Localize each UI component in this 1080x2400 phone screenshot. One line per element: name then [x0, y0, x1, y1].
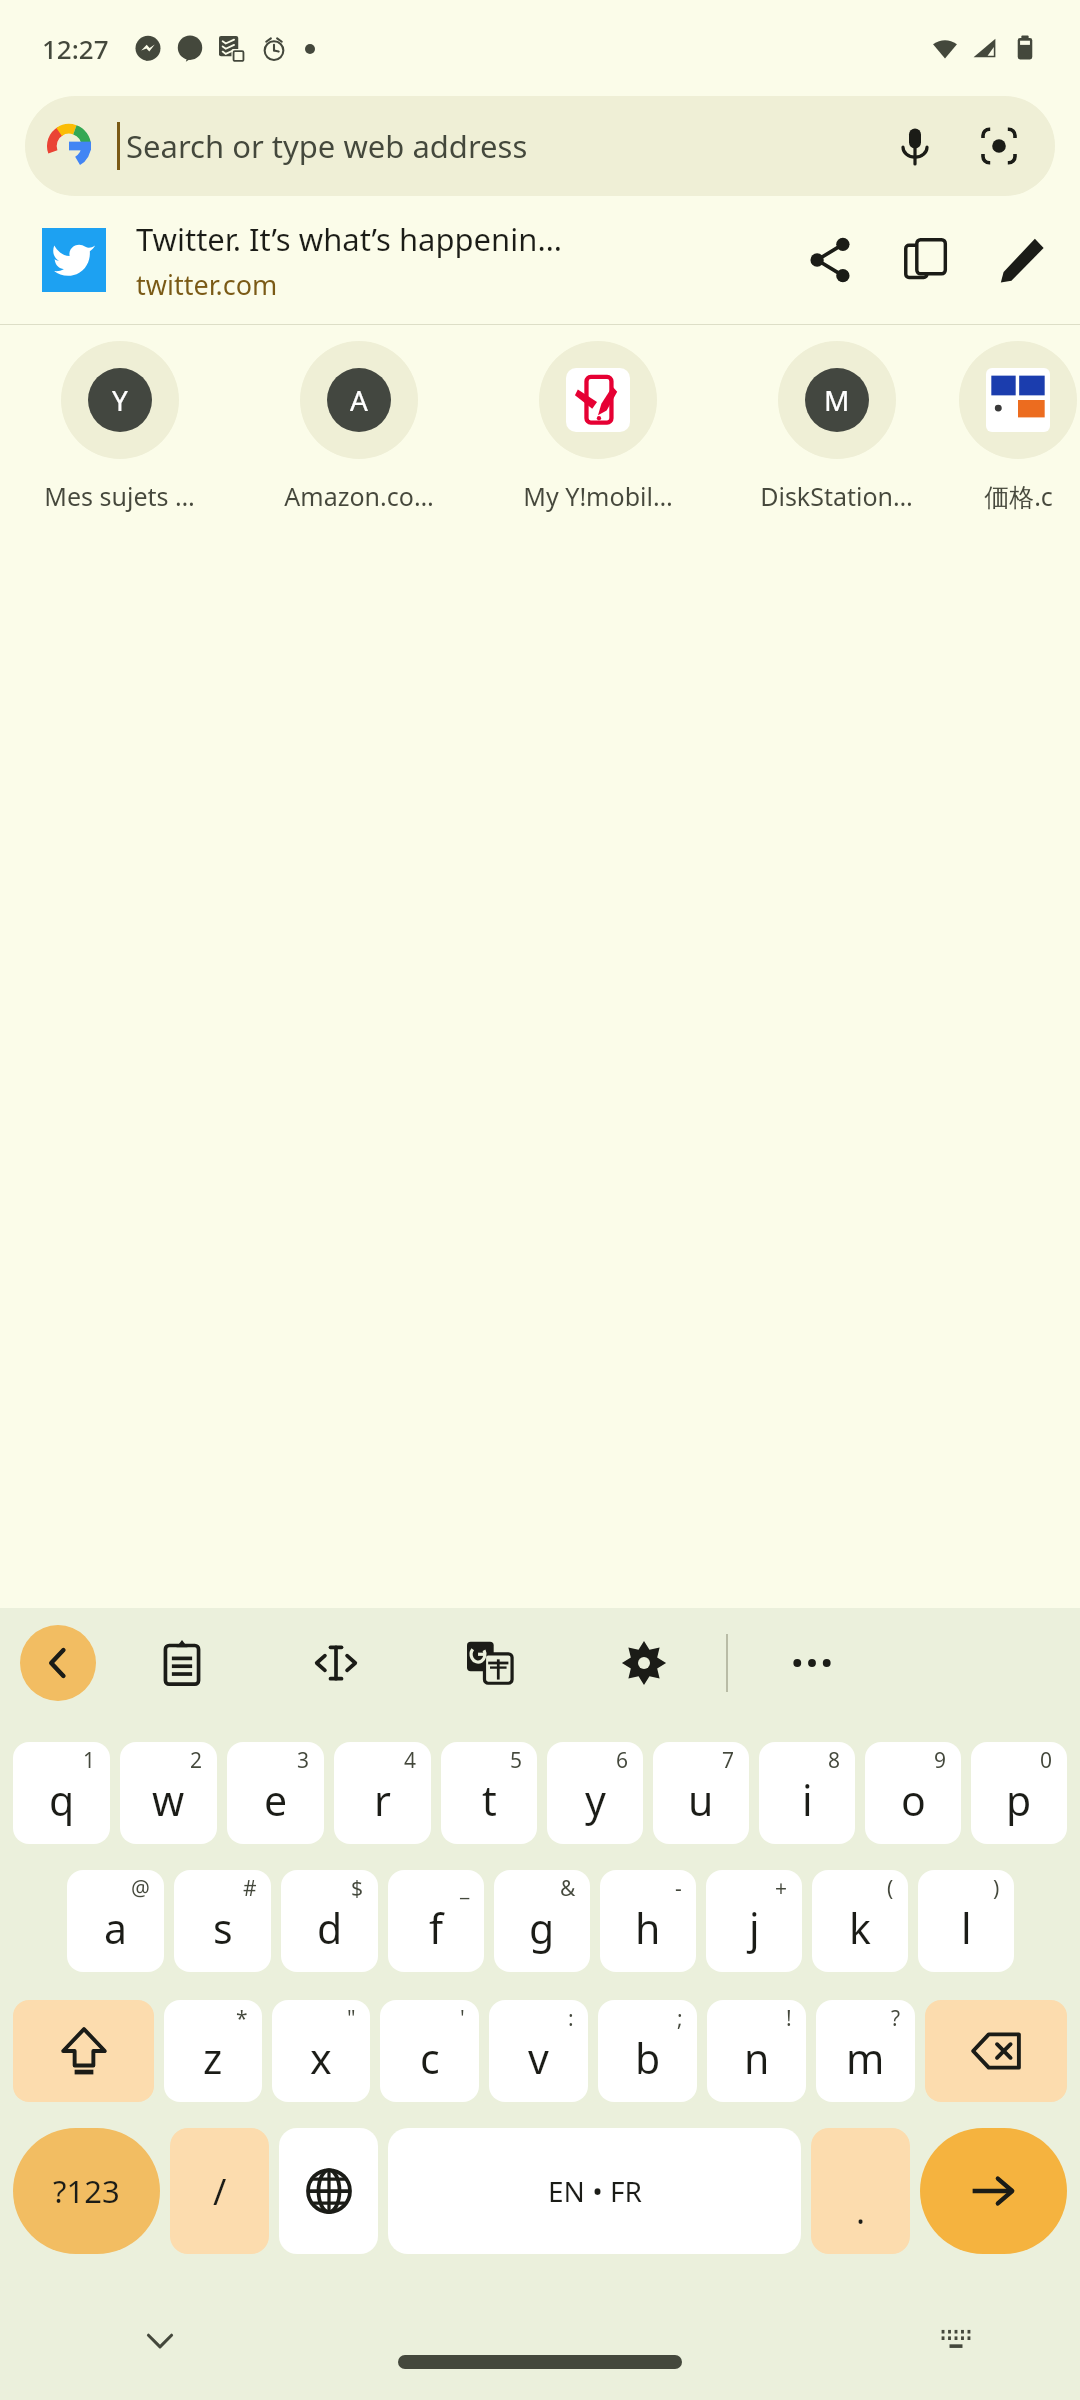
- button[interactable]: #: [174, 1870, 271, 1972]
- staticText: .: [856, 2188, 866, 2234]
- staticText: i: [802, 1772, 813, 1828]
- button[interactable]: Text editing: [296, 1623, 376, 1703]
- button[interactable]: .: [811, 2128, 910, 2254]
- button[interactable]: M: [717, 325, 956, 535]
- button[interactable]: ": [272, 2000, 370, 2102]
- staticText: twitter.com: [136, 266, 278, 303]
- staticText: 8: [828, 1746, 841, 1775]
- staticText: #: [243, 1874, 257, 1903]
- button[interactable]: More options: [772, 1623, 852, 1703]
- staticText: w: [152, 1772, 185, 1828]
- button[interactable]: 1: [13, 1742, 110, 1844]
- staticText: x: [310, 2030, 332, 2086]
- button[interactable]: Copy link: [878, 212, 974, 308]
- button[interactable]: Settings: [604, 1623, 684, 1703]
- staticText: 5: [510, 1746, 523, 1775]
- button[interactable]: &: [494, 1870, 590, 1972]
- staticText: 価格.c: [984, 479, 1053, 513]
- button[interactable]: ?123: [13, 2128, 160, 2254]
- button[interactable]: 5: [441, 1742, 537, 1844]
- staticText: ": [347, 2004, 356, 2033]
- staticText: ': [460, 2004, 465, 2033]
- button[interactable]: Twitter. It’s what’s happenin…: [0, 196, 1080, 324]
- staticText: 1: [83, 1746, 96, 1775]
- button[interactable]: 2: [120, 1742, 217, 1844]
- button[interactable]: 6: [547, 1742, 643, 1844]
- staticText: Mes sujets …: [44, 479, 195, 513]
- button[interactable]: Voice search: [873, 104, 957, 188]
- staticText: e: [264, 1772, 288, 1828]
- staticText: 9: [934, 1746, 947, 1775]
- button[interactable]: +: [706, 1870, 802, 1972]
- button[interactable]: @: [67, 1870, 164, 1972]
- button[interactable]: Search with camera: [957, 104, 1041, 188]
- staticText: f: [429, 1900, 444, 1956]
- button[interactable]: Change language: [279, 2128, 378, 2254]
- button[interactable]: Share: [782, 212, 878, 308]
- staticText: Search or type web address: [126, 125, 873, 167]
- staticText: r: [374, 1772, 391, 1828]
- staticText: t: [482, 1772, 497, 1828]
- staticText: 4: [404, 1746, 417, 1775]
- button[interactable]: 0: [971, 1742, 1067, 1844]
- button[interactable]: Edit query: [974, 212, 1070, 308]
- button[interactable]: 3: [227, 1742, 324, 1844]
- button[interactable]: $: [281, 1870, 378, 1972]
- button[interactable]: Clipboard: [142, 1623, 222, 1703]
- button[interactable]: Back: [20, 1625, 96, 1701]
- staticText: b: [635, 2030, 661, 2086]
- staticText: -: [675, 1874, 682, 1903]
- button[interactable]: *: [164, 2000, 262, 2102]
- staticText: l: [961, 1900, 972, 1956]
- staticText: !: [786, 2004, 792, 2033]
- button[interactable]: Backspace: [925, 2000, 1067, 2102]
- staticText: 7: [722, 1746, 735, 1775]
- button[interactable]: Switch keyboard: [918, 2302, 994, 2378]
- button[interactable]: :: [489, 2000, 588, 2102]
- button[interactable]: 8: [759, 1742, 855, 1844]
- button[interactable]: A: [239, 325, 478, 535]
- staticText: Y: [112, 381, 128, 419]
- staticText: u: [688, 1772, 714, 1828]
- button[interactable]: -: [600, 1870, 696, 1972]
- staticText: n: [744, 2030, 770, 2086]
- staticText: a: [104, 1900, 128, 1956]
- button[interactable]: Hide keyboard: [122, 2302, 198, 2378]
- staticText: 12:27: [42, 31, 109, 66]
- staticText: ?: [891, 2004, 901, 2033]
- staticText: v: [528, 2030, 549, 2086]
- button[interactable]: Search or type web address: [25, 96, 1055, 196]
- button[interactable]: (: [812, 1870, 908, 1972]
- staticText: 0: [1040, 1746, 1053, 1775]
- button[interactable]: Enter: [920, 2128, 1067, 2254]
- button[interactable]: ?: [816, 2000, 915, 2102]
- button[interactable]: 価格.c: [956, 325, 1080, 535]
- button[interactable]: 9: [865, 1742, 961, 1844]
- button[interactable]: EN • FR: [388, 2128, 801, 2254]
- staticText: m: [846, 2030, 885, 2086]
- staticText: 2: [190, 1746, 203, 1775]
- staticText: +: [775, 1874, 788, 1903]
- staticText: 3: [297, 1746, 310, 1775]
- staticText: d: [317, 1900, 343, 1956]
- button[interactable]: Shift: [13, 2000, 154, 2102]
- button[interactable]: ): [918, 1870, 1014, 1972]
- button[interactable]: !: [707, 2000, 806, 2102]
- button[interactable]: /: [170, 2128, 269, 2254]
- staticText: z: [203, 2030, 223, 2086]
- button[interactable]: 4: [334, 1742, 431, 1844]
- staticText: ?123: [53, 2170, 120, 2212]
- button[interactable]: 7: [653, 1742, 749, 1844]
- staticText: Twitter. It’s what’s happenin…: [136, 218, 562, 260]
- staticText: ): [993, 1874, 1000, 1903]
- button[interactable]: Translate: [450, 1623, 530, 1703]
- button[interactable]: Y: [0, 325, 239, 535]
- staticText: &: [560, 1874, 576, 1903]
- button[interactable]: _: [388, 1870, 484, 1972]
- button[interactable]: ;: [598, 2000, 697, 2102]
- staticText: $: [351, 1874, 364, 1903]
- staticText: M: [824, 381, 850, 419]
- button[interactable]: ': [380, 2000, 479, 2102]
- button[interactable]: My Y!mobil…: [478, 325, 717, 535]
- staticText: Amazon.co…: [284, 479, 434, 513]
